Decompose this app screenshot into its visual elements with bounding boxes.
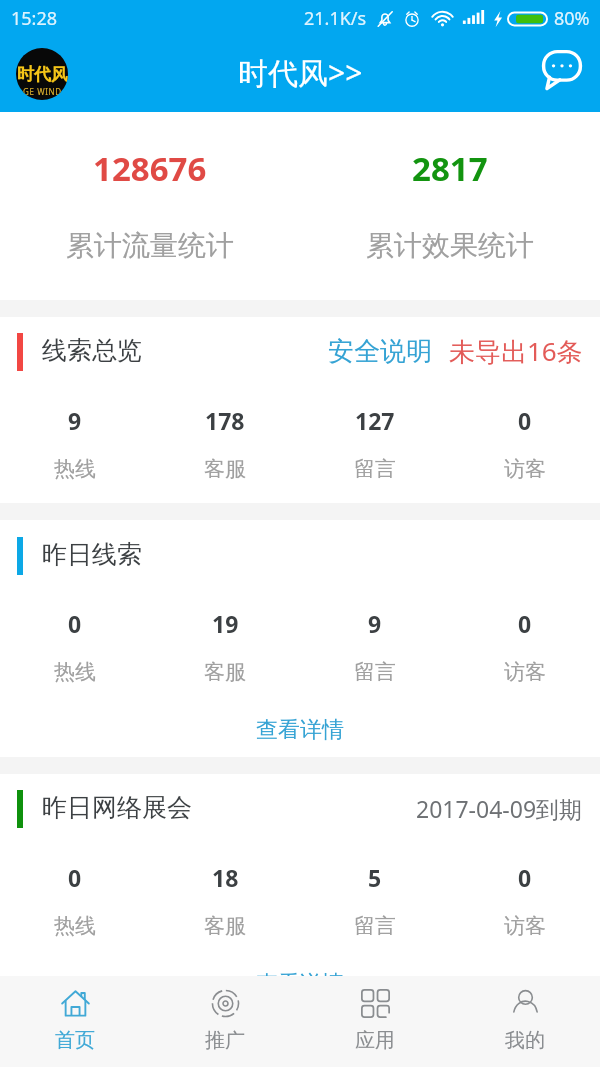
staticText: 0 <box>518 608 532 639</box>
button[interactable]: 查看详情 <box>256 970 344 976</box>
button[interactable]: Logo <box>16 48 68 100</box>
staticText: 首页 <box>55 1028 95 1053</box>
button[interactable]: 应用 <box>300 976 450 1005</box>
staticText: 累计流量统计 <box>66 228 234 263</box>
staticText: 访客 <box>504 913 546 939</box>
staticText: 留言 <box>354 913 396 939</box>
staticText: 昨日网络展会 <box>42 792 192 823</box>
staticText: 留言 <box>354 659 396 685</box>
button[interactable]: 0 <box>0 774 150 805</box>
staticText: 昨日线索 <box>42 539 142 570</box>
staticText: 热线 <box>54 456 96 482</box>
button[interactable]: 5 <box>300 774 450 805</box>
button[interactable]: 18 <box>150 774 300 805</box>
staticText: 2817 <box>412 146 488 191</box>
staticText: 9 <box>368 608 382 639</box>
button[interactable]: Messages <box>532 40 592 100</box>
staticText: 21.1K/s <box>304 6 367 31</box>
staticText: 应用 <box>355 1028 395 1053</box>
staticText: 安全说明 <box>328 335 432 368</box>
staticText: 我的 <box>505 1028 545 1053</box>
button[interactable]: 127 <box>300 317 450 348</box>
staticText: 0 <box>518 405 532 436</box>
staticText: 客服 <box>204 659 246 685</box>
staticText: 5 <box>368 862 382 893</box>
staticText: 2017-04-09到期 <box>416 793 583 824</box>
staticText: 9 <box>68 405 82 436</box>
staticText: 15:28 <box>11 6 58 31</box>
button[interactable]: 我的 <box>450 976 600 1005</box>
staticText: 累计效果统计 <box>366 228 534 263</box>
staticText: GE WIND <box>23 86 62 97</box>
button[interactable]: 0 <box>450 774 600 805</box>
button[interactable]: 查看详情 <box>256 716 344 744</box>
staticText: 客服 <box>204 456 246 482</box>
staticText: 0 <box>68 608 82 639</box>
staticText: 128676 <box>93 146 207 191</box>
staticText: 热线 <box>54 659 96 685</box>
button[interactable]: 推广 <box>150 976 300 1005</box>
button[interactable]: 未导出16条 <box>449 333 583 369</box>
staticText: 访客 <box>504 659 546 685</box>
staticText: 推广 <box>205 1028 245 1053</box>
button[interactable]: 安全说明 <box>328 335 432 368</box>
button[interactable]: 0 <box>450 317 600 348</box>
staticText: 访客 <box>504 456 546 482</box>
staticText: 查看详情 <box>256 716 344 744</box>
staticText: 留言 <box>354 456 396 482</box>
staticText: 0 <box>518 862 532 893</box>
staticText: 19 <box>212 608 239 639</box>
staticText: 127 <box>355 405 395 436</box>
staticText: 178 <box>205 405 245 436</box>
staticText: 时代风 <box>17 64 68 85</box>
button[interactable]: 9 <box>0 317 150 348</box>
staticText: 未导出16条 <box>449 333 583 369</box>
button[interactable]: 0 <box>0 520 150 551</box>
staticText: 0 <box>68 862 82 893</box>
staticText: 热线 <box>54 913 96 939</box>
button[interactable]: 首页 <box>0 976 150 1005</box>
staticText: 线索总览 <box>42 335 142 366</box>
staticText: 查看详情 <box>256 970 344 976</box>
staticText: 客服 <box>204 913 246 939</box>
staticText: 18 <box>212 862 239 893</box>
staticText: 时代风>> <box>238 52 363 93</box>
staticText: 80% <box>554 6 590 31</box>
